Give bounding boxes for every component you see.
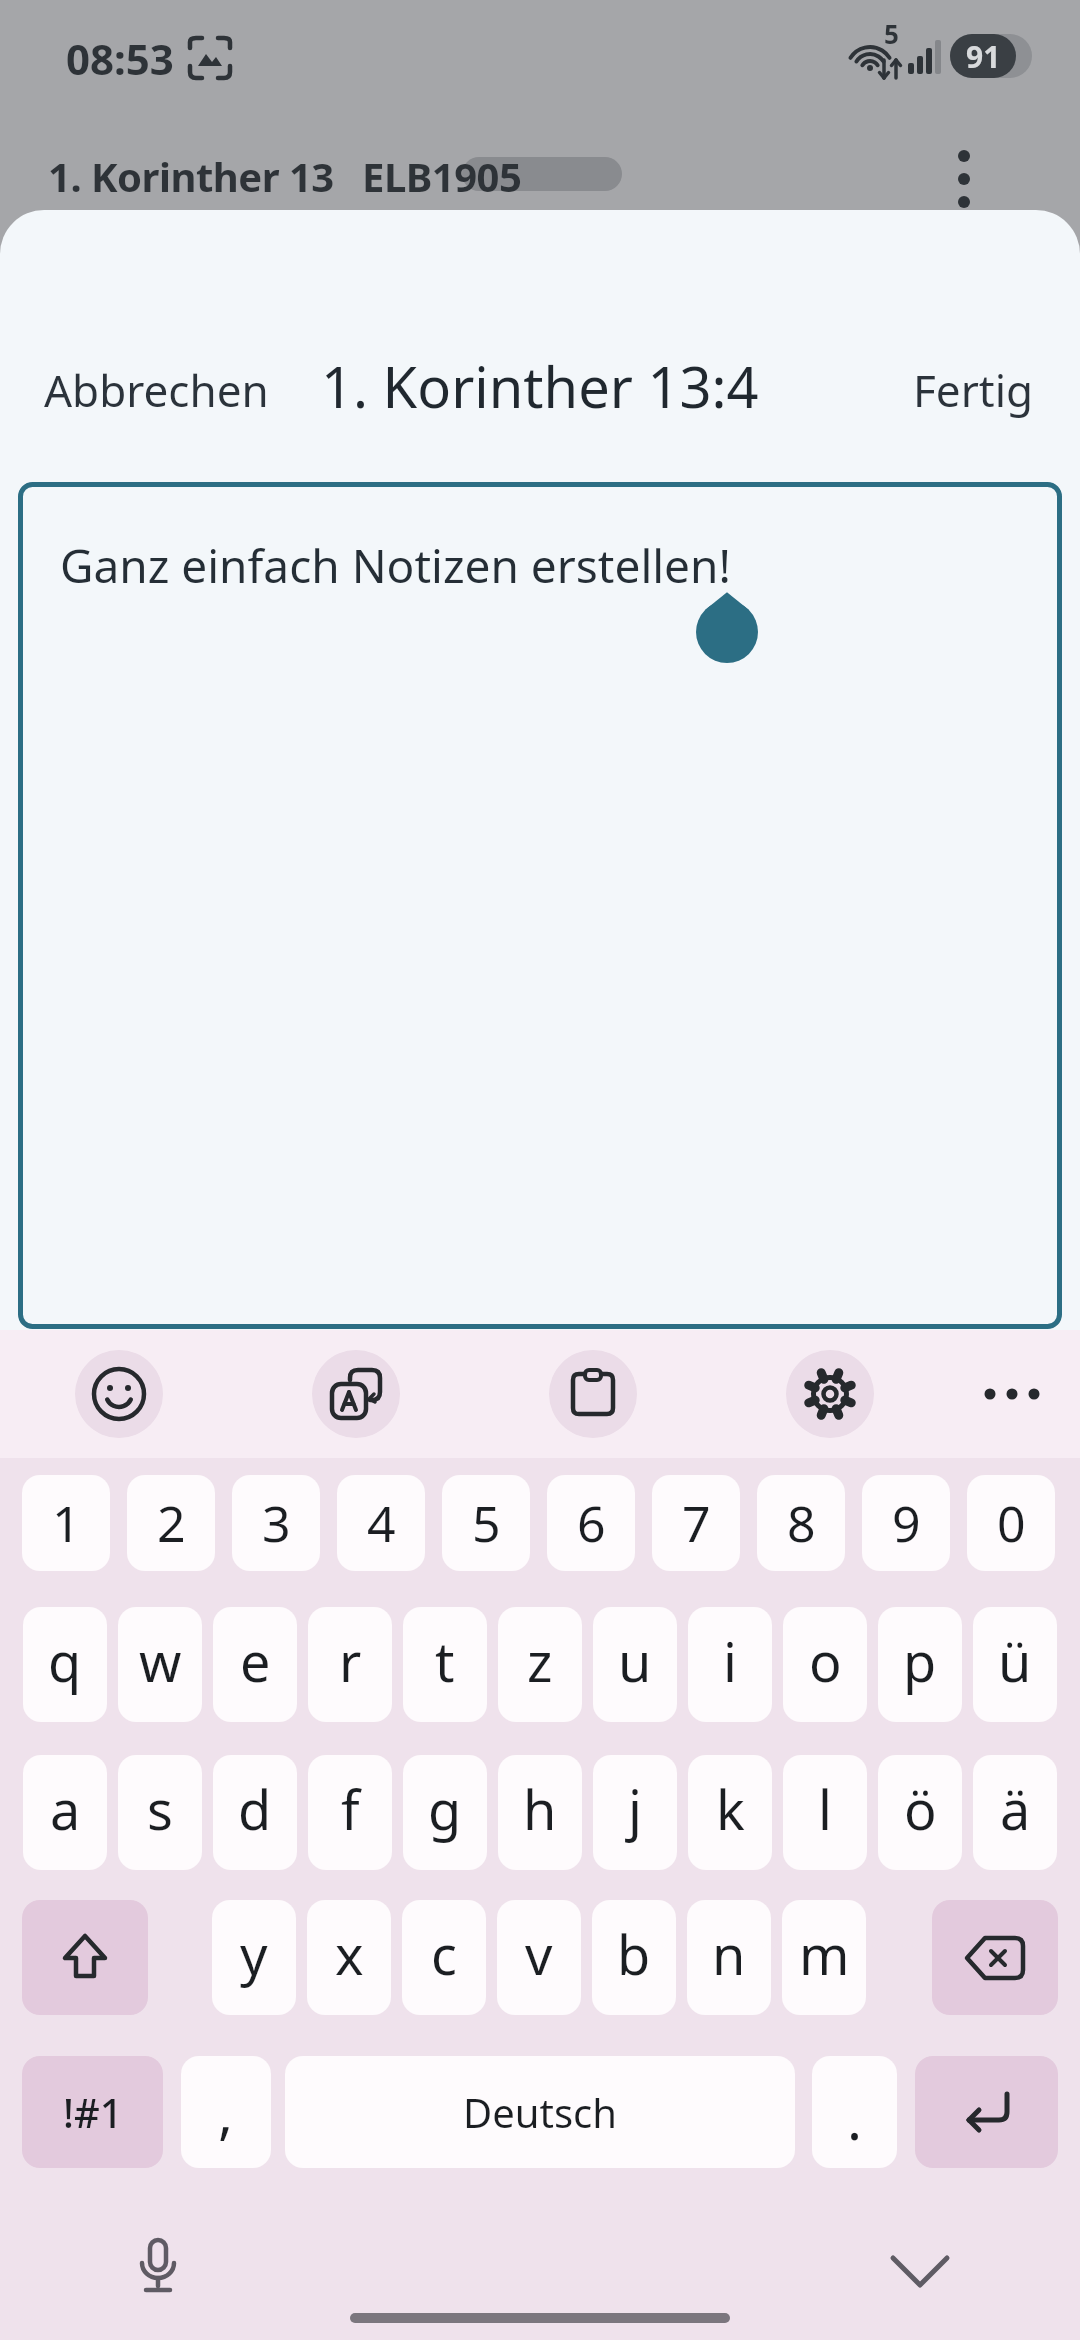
staticText: 8 — [787, 1489, 816, 1557]
staticText: 91 — [966, 36, 1001, 77]
button[interactable]: v — [497, 1900, 581, 2015]
staticText: h — [523, 1772, 557, 1846]
button[interactable] — [930, 130, 1000, 226]
button[interactable]: o — [783, 1607, 867, 1722]
button[interactable]: 4 — [337, 1475, 425, 1571]
button[interactable]: 2 — [127, 1475, 215, 1571]
staticText: 7 — [682, 1489, 711, 1557]
button[interactable]: Ganz einfach Notizen erstellen! — [18, 482, 1062, 1329]
staticText: d — [238, 1772, 272, 1846]
button[interactable] — [915, 2056, 1058, 2168]
staticText: Deutsch — [463, 2085, 617, 2139]
button[interactable]: 3 — [232, 1475, 320, 1571]
button[interactable]: 1 — [22, 1475, 110, 1571]
button[interactable]: Fertig — [880, 350, 1060, 430]
button[interactable]: f — [308, 1755, 392, 1870]
staticText: f — [341, 1772, 360, 1846]
button[interactable]: Deutsch — [285, 2056, 795, 2168]
button[interactable]: , — [181, 2056, 271, 2168]
button[interactable]: z — [498, 1607, 582, 1722]
staticText: z — [527, 1624, 553, 1698]
staticText: . — [847, 2080, 863, 2156]
button[interactable]: 8 — [757, 1475, 845, 1571]
button[interactable]: m — [782, 1900, 866, 2015]
button[interactable]: 7 — [652, 1475, 740, 1571]
staticText: s — [147, 1772, 173, 1846]
button[interactable]: w — [118, 1607, 202, 1722]
button[interactable]: 5 — [442, 1475, 530, 1571]
staticText: 08:53 — [66, 30, 174, 87]
button[interactable] — [75, 1350, 163, 1438]
staticText: 0 — [997, 1489, 1026, 1557]
staticText: g — [428, 1772, 462, 1846]
button[interactable]: g — [403, 1755, 487, 1870]
button[interactable]: d — [213, 1755, 297, 1870]
button[interactable] — [962, 1350, 1062, 1438]
button[interactable] — [22, 1900, 148, 2015]
button[interactable]: p — [878, 1607, 962, 1722]
staticText: x — [335, 1917, 364, 1991]
button[interactable]: ä — [973, 1755, 1057, 1870]
button[interactable] — [110, 2220, 206, 2316]
staticText: 2 — [157, 1489, 186, 1557]
staticText: 3 — [262, 1489, 291, 1557]
staticText: q — [48, 1624, 82, 1698]
staticText: l — [818, 1772, 832, 1846]
button[interactable]: e — [213, 1607, 297, 1722]
staticText: y — [240, 1917, 268, 1991]
button[interactable] — [549, 1350, 637, 1438]
staticText: ELB1905 — [362, 149, 522, 203]
staticText: Fertig — [913, 360, 1034, 420]
button[interactable]: q — [23, 1607, 107, 1722]
button[interactable]: y — [212, 1900, 296, 2015]
button[interactable]: l — [783, 1755, 867, 1870]
staticText: Ganz einfach Notizen erstellen! — [60, 534, 731, 597]
button[interactable] — [786, 1350, 874, 1438]
button[interactable]: j — [593, 1755, 677, 1870]
staticText: 1. Korinther 13 — [48, 149, 334, 203]
button[interactable]: n — [687, 1900, 771, 2015]
staticText: 5 — [884, 16, 899, 51]
button[interactable]: i — [688, 1607, 772, 1722]
staticText: m — [799, 1917, 850, 1991]
staticText: ä — [1000, 1772, 1031, 1846]
staticText: n — [712, 1917, 746, 1991]
button[interactable]: a — [23, 1755, 107, 1870]
staticText: t — [435, 1624, 455, 1698]
button[interactable]: c — [402, 1900, 486, 2015]
button[interactable] — [872, 2232, 968, 2312]
button[interactable]: b — [592, 1900, 676, 2015]
staticText: c — [431, 1917, 457, 1991]
button[interactable] — [932, 1900, 1058, 2015]
button[interactable]: s — [118, 1755, 202, 1870]
button[interactable]: u — [593, 1607, 677, 1722]
staticText: j — [628, 1772, 642, 1846]
staticText: i — [723, 1624, 737, 1698]
button[interactable]: k — [688, 1755, 772, 1870]
button[interactable]: . — [812, 2056, 897, 2168]
button[interactable]: t — [403, 1607, 487, 1722]
button[interactable]: r — [308, 1607, 392, 1722]
staticText: 1. Korinther 13:4 — [321, 348, 759, 424]
staticText: !#1 — [63, 2085, 123, 2139]
staticText: 5 — [472, 1489, 501, 1557]
staticText: 1 — [52, 1489, 81, 1557]
staticText: e — [240, 1624, 271, 1698]
button[interactable]: !#1 — [22, 2056, 163, 2168]
button[interactable]: x — [307, 1900, 391, 2015]
button[interactable]: h — [498, 1755, 582, 1870]
staticText: b — [617, 1917, 651, 1991]
button[interactable] — [312, 1350, 400, 1438]
staticText: 6 — [577, 1489, 606, 1557]
staticText: r — [339, 1624, 362, 1698]
staticText: w — [139, 1624, 182, 1698]
button[interactable]: ö — [878, 1755, 962, 1870]
staticText: Abbrechen — [44, 360, 269, 420]
button[interactable]: 9 — [862, 1475, 950, 1571]
button[interactable]: Abbrechen — [30, 350, 290, 430]
button[interactable]: ü — [973, 1607, 1057, 1722]
staticText: a — [50, 1772, 81, 1846]
button[interactable]: 6 — [547, 1475, 635, 1571]
staticText: v — [525, 1917, 553, 1991]
button[interactable]: 0 — [967, 1475, 1055, 1571]
